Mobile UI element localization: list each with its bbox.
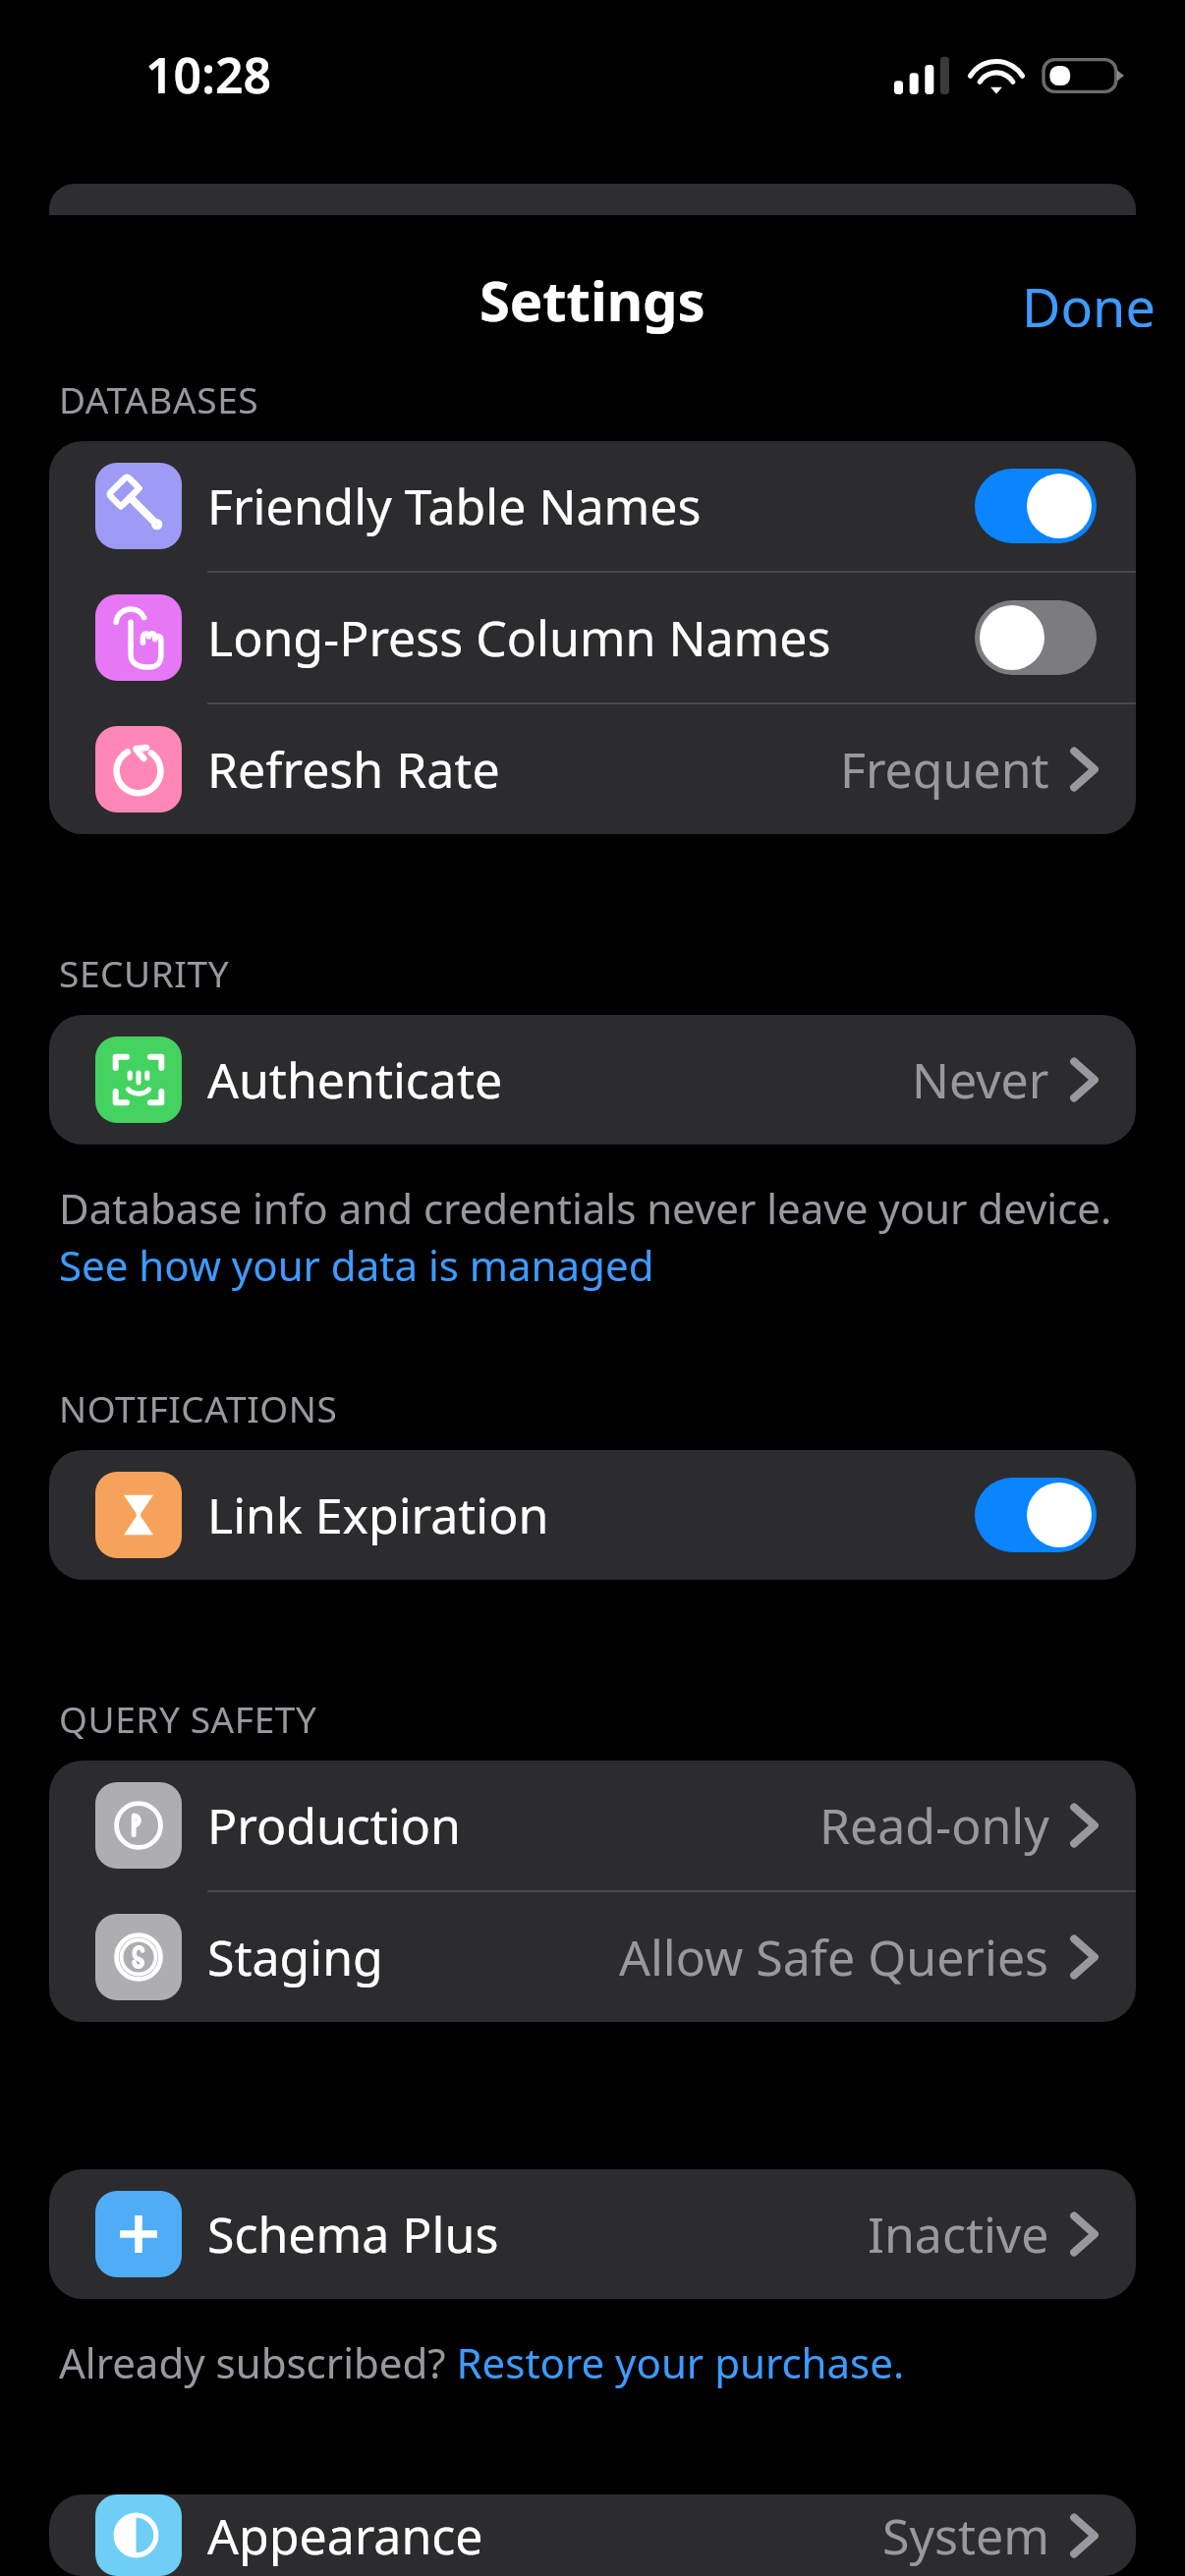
staticText: Appearance: [207, 2502, 483, 2569]
button[interactable]: Long-Press Column Names: [49, 573, 1136, 702]
button[interactable]: Link Expiration: [49, 1450, 1136, 1580]
staticText: Schema Plus: [207, 2201, 499, 2268]
button[interactable]: Refresh Rate: [49, 704, 1136, 834]
staticText: DATABASES: [59, 374, 259, 423]
button[interactable]: Off: [975, 600, 1097, 675]
staticText: Staging: [207, 1924, 383, 1990]
button[interactable]: On: [975, 469, 1097, 543]
staticText: Settings: [480, 262, 705, 335]
button[interactable]: Schema Plus: [49, 2169, 1136, 2299]
staticText: Already subscribed? Restore your purchas…: [59, 2334, 905, 2390]
staticText: NOTIFICATIONS: [59, 1383, 338, 1432]
staticText: Authenticate: [207, 1046, 503, 1113]
button[interactable]: Appearance: [49, 2494, 1136, 2576]
staticText: Never: [912, 1046, 1049, 1113]
staticText: Frequent: [840, 736, 1049, 803]
staticText: Long-Press Column Names: [207, 604, 831, 671]
staticText: Allow Safe Queries: [619, 1924, 1049, 1990]
staticText: Friendly Table Names: [207, 473, 702, 539]
staticText: SECURITY: [59, 948, 230, 997]
button[interactable]: Production: [49, 1761, 1136, 1890]
staticText: 10:28: [145, 41, 272, 108]
button[interactable]: Friendly Table Names: [49, 441, 1136, 571]
staticText: Production: [207, 1792, 461, 1859]
staticText: Refresh Rate: [207, 736, 500, 803]
staticText: Link Expiration: [207, 1482, 549, 1548]
staticText: Done: [1022, 270, 1156, 327]
staticText: Read-only: [819, 1792, 1049, 1859]
button[interactable]: Done: [992, 262, 1185, 335]
staticText: Inactive: [868, 2201, 1049, 2268]
staticText: QUERY SAFETY: [59, 1694, 317, 1743]
button[interactable]: Staging: [49, 1892, 1136, 2022]
staticText: Database info and credentials never leav…: [59, 1180, 1112, 1293]
staticText: System: [882, 2502, 1049, 2569]
button[interactable]: Authenticate: [49, 1015, 1136, 1145]
button[interactable]: On: [975, 1478, 1097, 1552]
